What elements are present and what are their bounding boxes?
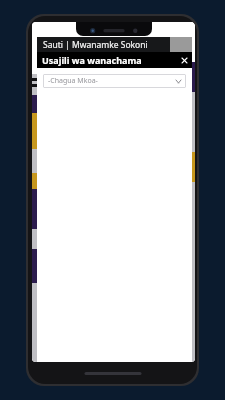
button[interactable]: Funga xyxy=(176,52,192,68)
button[interactable]: Usajili wa wanachama xyxy=(37,52,192,68)
staticText: Usajili wa wanachama xyxy=(42,54,176,66)
button[interactable]: Sauti | Mwanamke Sokoni xyxy=(37,37,192,52)
staticText: Sauti | Mwanamke Sokoni xyxy=(43,39,148,51)
staticText: -Chagua Mkoa- xyxy=(48,76,176,86)
button[interactable]: -Chagua Mkoa- xyxy=(43,74,186,88)
